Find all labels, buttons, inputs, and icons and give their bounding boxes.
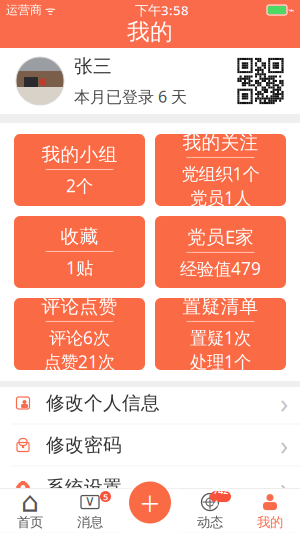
- staticText: ›: [280, 470, 288, 505]
- staticText: 党组织1个: [181, 162, 259, 185]
- staticText: 置疑1次: [190, 326, 251, 349]
- staticText: 张三: [74, 55, 112, 78]
- button[interactable]: 置疑清单: [155, 298, 286, 370]
- staticText: 评论6次: [49, 326, 110, 349]
- button[interactable]: 我的关注: [155, 134, 286, 206]
- staticText: 党员E家: [187, 224, 254, 249]
- staticText: 运营商: [6, 3, 42, 17]
- staticText: 本月已登录 6 天: [74, 86, 187, 107]
- button[interactable]: 修改密码: [0, 429, 300, 471]
- staticText: 2个: [66, 174, 93, 197]
- button[interactable]: ⌂: [0, 489, 60, 533]
- staticText: +: [140, 479, 160, 525]
- staticText: 修改个人信息: [46, 391, 160, 414]
- staticText: 1贴: [66, 256, 93, 279]
- staticText: 我的关注: [182, 131, 258, 154]
- staticText: 5: [103, 490, 108, 503]
- staticText: 下午3:58: [135, 1, 189, 19]
- staticText: 我的小组: [41, 143, 117, 166]
- button[interactable]: 我的小组: [14, 134, 145, 206]
- button[interactable]: 我的: [240, 489, 300, 533]
- staticText: 修改密码: [46, 433, 122, 456]
- staticText: 我的: [127, 18, 173, 46]
- button[interactable]: 系统设置: [0, 471, 300, 504]
- staticText: 消息: [77, 514, 103, 530]
- button[interactable]: 收藏: [14, 216, 145, 288]
- staticText: ⌂: [21, 486, 39, 518]
- staticText: 处理1个: [190, 350, 251, 373]
- button[interactable]: 评论点赞: [14, 298, 145, 370]
- button[interactable]: 党员E家: [155, 216, 286, 288]
- staticText: 评论点赞: [41, 295, 117, 318]
- staticText: 党员1人: [190, 186, 251, 209]
- staticText: 经验值479: [180, 257, 261, 280]
- staticText: 我的: [257, 514, 283, 530]
- staticText: 动态: [197, 514, 223, 530]
- staticText: 7424: [213, 484, 228, 509]
- staticText: 置疑清单: [182, 295, 258, 318]
- button[interactable]: ∨: [60, 489, 120, 533]
- staticText: ∨: [84, 492, 95, 509]
- button[interactable]: 新建: [129, 479, 171, 525]
- staticText: ᯤ: [42, 2, 56, 18]
- staticText: ⌁: [288, 4, 294, 16]
- button[interactable]: 7424: [180, 489, 240, 533]
- staticText: ›: [280, 385, 288, 421]
- staticText: 点赞21次: [44, 350, 115, 373]
- staticText: 收藏: [60, 225, 98, 248]
- staticText: 首页: [17, 514, 43, 530]
- staticText: ›: [280, 427, 288, 463]
- staticText: 系统设置: [46, 476, 122, 499]
- button[interactable]: 张三: [0, 48, 300, 114]
- button[interactable]: 修改个人信息: [0, 387, 300, 429]
